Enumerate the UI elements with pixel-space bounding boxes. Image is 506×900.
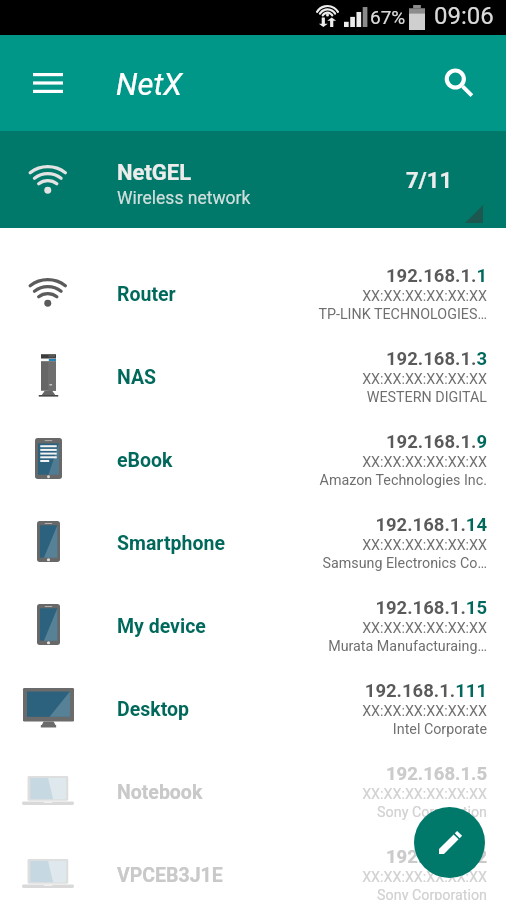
button[interactable]: Search [435, 59, 483, 107]
staticText: NetX [116, 66, 183, 102]
button[interactable]: Smartphone [0, 500, 506, 583]
staticText: Sony Corporation [377, 804, 487, 821]
button[interactable]: Router [0, 251, 506, 334]
staticText: Wireless network [117, 188, 251, 209]
staticText: Desktop [117, 698, 189, 721]
staticText: WESTERN DIGITAL [366, 389, 487, 406]
staticText: Murata Manufacturaing… [328, 638, 487, 655]
staticText: XX:XX:XX:XX:XX:XX [362, 371, 487, 388]
staticText: 7/11 [406, 168, 453, 194]
staticText: 192.168.1.111 [364, 680, 487, 702]
staticText: 09:06 [434, 2, 494, 30]
staticText: XX:XX:XX:XX:XX:XX [362, 703, 487, 720]
button[interactable]: Desktop [0, 666, 506, 749]
staticText: Amazon Technologies Inc. [319, 472, 487, 489]
staticText: Notebook [117, 781, 203, 804]
staticText: 192.168.1.2 [385, 846, 487, 868]
staticText: Smartphone [117, 532, 225, 555]
staticText: Router [117, 283, 176, 306]
staticText: TP-LINK TECHNOLOGIES… [318, 306, 487, 323]
button[interactable]: Notebook [0, 749, 506, 832]
button[interactable]: Menu [21, 56, 75, 110]
staticText: XX:XX:XX:XX:XX:XX [362, 620, 487, 637]
staticText: Intel Corporate [392, 721, 487, 738]
staticText: XX:XX:XX:XX:XX:XX [362, 288, 487, 305]
staticText: 192.168.1.5 [385, 763, 487, 785]
staticText: Sony Corporation [377, 887, 487, 900]
staticText: 192.168.1.1 [385, 265, 487, 287]
staticText: XX:XX:XX:XX:XX:XX [362, 537, 487, 554]
staticText: 67% [370, 6, 406, 28]
staticText: eBook [117, 449, 173, 472]
staticText: 192.168.1.14 [375, 514, 487, 536]
staticText: XX:XX:XX:XX:XX:XX [362, 786, 487, 803]
button[interactable]: NAS [0, 334, 506, 417]
staticText: My device [117, 615, 206, 638]
staticText: 192.168.1.15 [375, 597, 487, 619]
staticText: XX:XX:XX:XX:XX:XX [362, 454, 487, 471]
staticText: 192.168.1.3 [385, 348, 487, 370]
staticText: XX:XX:XX:XX:XX:XX [362, 869, 487, 886]
staticText: NetGEL [117, 160, 192, 186]
button[interactable]: VPCEB3J1E [0, 832, 506, 900]
button[interactable]: Edit [414, 807, 485, 878]
button[interactable]: My device [0, 583, 506, 666]
staticText: Samsung Electronics Co… [322, 555, 487, 572]
staticText: NAS [117, 366, 157, 389]
button[interactable]: NetGEL [0, 131, 506, 228]
staticText: VPCEB3J1E [117, 864, 223, 887]
button[interactable]: eBook [0, 417, 506, 500]
staticText: 192.168.1.9 [385, 431, 487, 453]
